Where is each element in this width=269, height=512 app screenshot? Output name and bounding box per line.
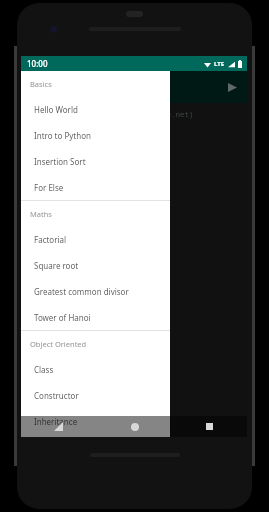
staticText: Class [34,364,54,375]
staticText: # Factorial [27,124,77,134]
button[interactable]: Run [223,78,241,96]
staticText: Insertion Sort [34,156,86,167]
staticText: Intro to Python [34,130,91,141]
staticText: return n * fact(n - 1) [27,162,144,172]
staticText: Greatest common divisor [34,286,129,297]
staticText: LTE [214,60,225,68]
button[interactable]: Back [21,416,96,437]
staticText: 10:00 [27,58,48,69]
button[interactable]: Square root [21,252,170,278]
button[interactable]: Home [97,416,172,437]
staticText: Maths [30,209,52,219]
staticText: Basics [30,79,52,89]
staticText: Tower of Hanoi [34,312,91,323]
button[interactable]: Class [21,356,170,382]
staticText: For Else [34,182,64,193]
staticText: } [27,210,32,220]
staticText: Hello World [34,104,78,115]
staticText: # Philip J. Guo (philip@pgbovine.net) [27,109,194,119]
staticText: Factorial [34,234,67,245]
button[interactable]: Greatest common divisor [21,278,170,304]
button[interactable]: Hello World [21,96,170,122]
button[interactable]: For Else [21,174,170,200]
button[interactable]: Factorial [21,226,170,252]
staticText: Object Oriented [30,339,87,349]
button[interactable]: Recent apps [172,416,247,437]
staticText: Square root [34,260,79,271]
button[interactable]: Tower of Hanoi [21,304,170,330]
button[interactable]: Insertion Sort [21,148,170,174]
button[interactable]: Constructor [21,382,170,408]
staticText: Inheritance [34,416,78,427]
button[interactable]: Intro to Python [21,122,170,148]
button[interactable]: Inheritance [21,408,170,434]
staticText: Constructor [34,390,79,401]
